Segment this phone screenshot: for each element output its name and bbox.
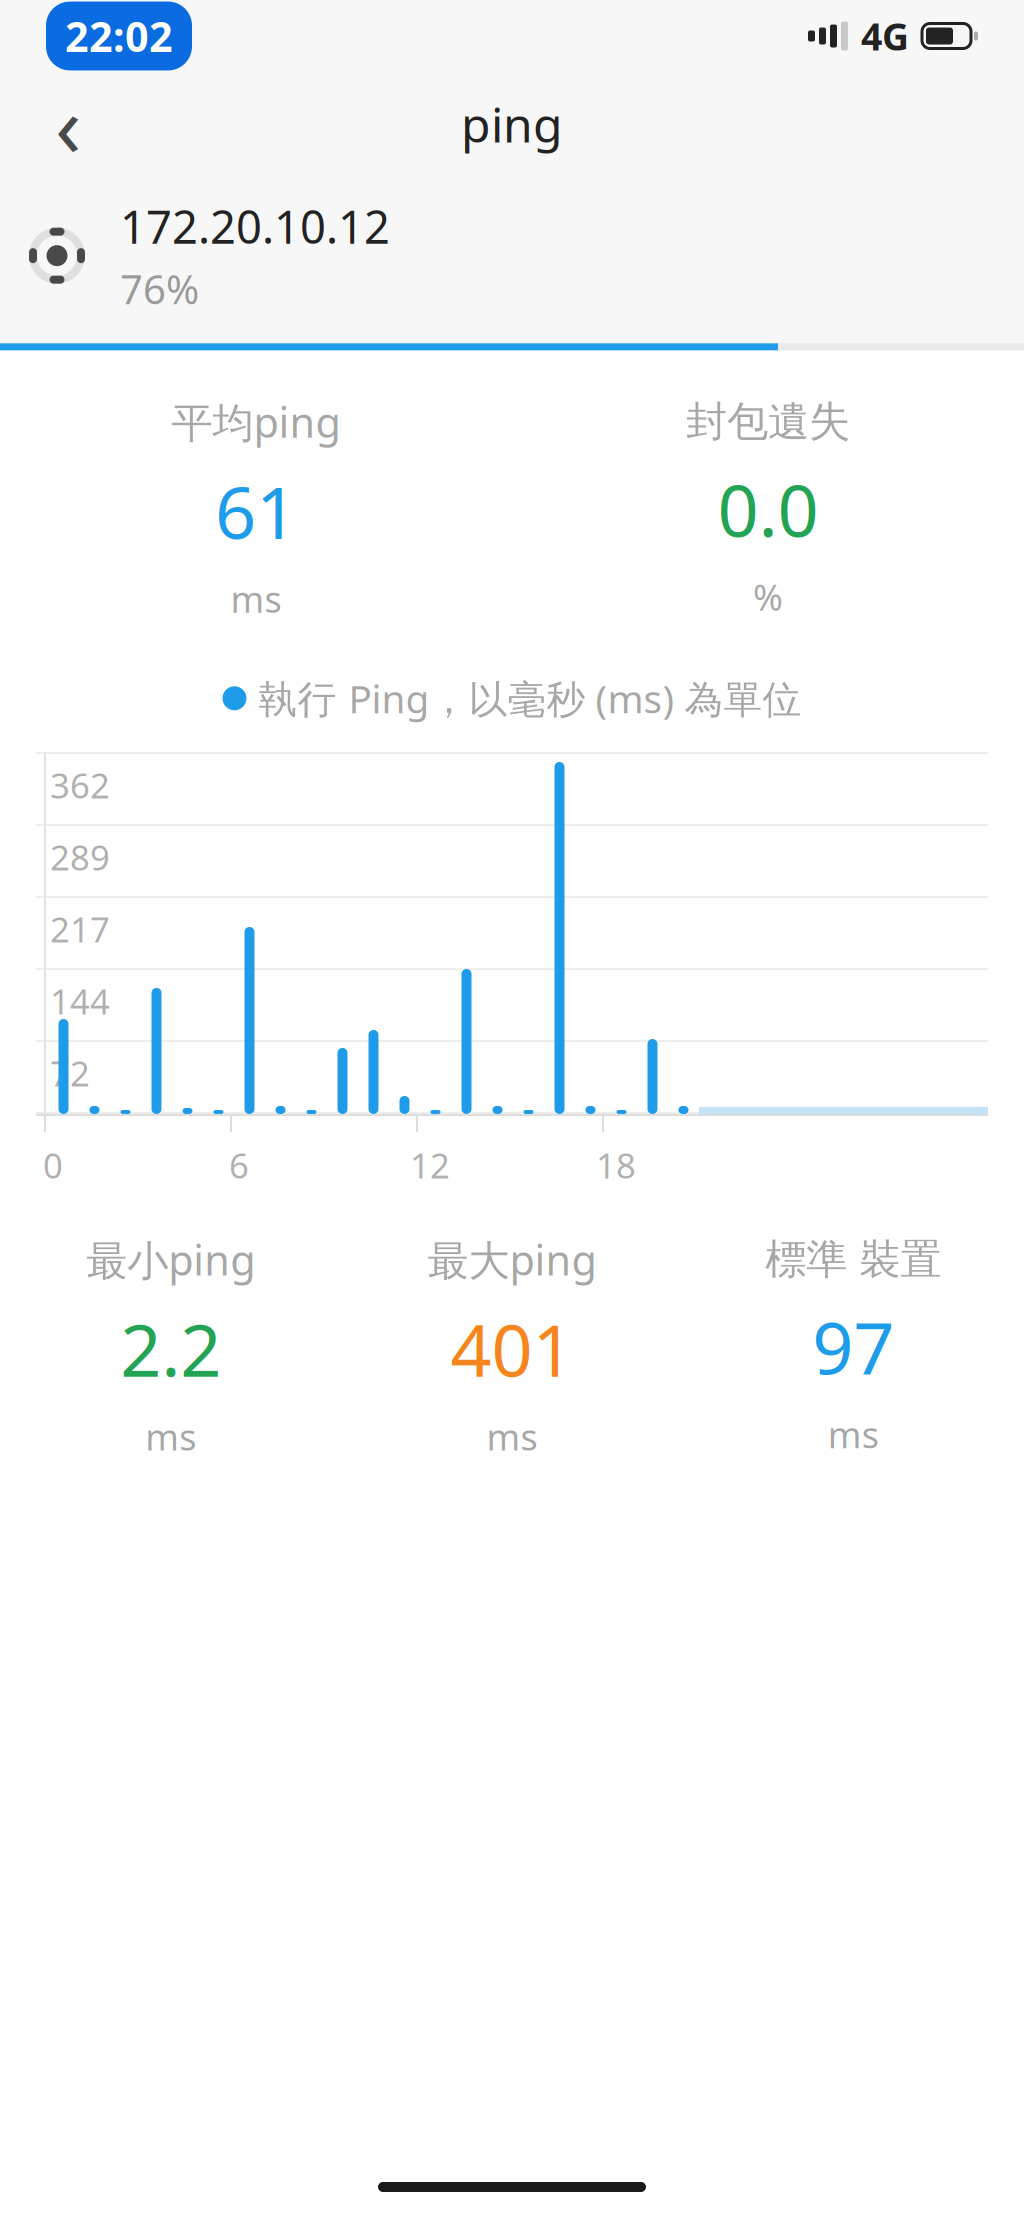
staticText: ms: [828, 1410, 879, 1458]
staticText: 12: [410, 1142, 450, 1188]
staticText: 172.20.10.12: [120, 196, 390, 256]
staticText: 401: [450, 1301, 573, 1396]
staticText: 標準 裝置: [765, 1234, 941, 1285]
staticText: 61: [215, 463, 297, 559]
staticText: 97: [812, 1299, 894, 1394]
staticText: ms: [486, 1412, 537, 1460]
staticText: 144: [50, 978, 110, 1024]
staticText: ping: [461, 92, 563, 156]
staticText: 18: [596, 1142, 636, 1188]
staticText: 22:02: [65, 9, 173, 63]
staticText: 封包遺失: [686, 396, 850, 447]
staticText: 4G: [861, 11, 909, 61]
staticText: %: [753, 573, 783, 621]
staticText: 289: [50, 834, 110, 880]
staticText: 最小ping: [86, 1232, 255, 1287]
staticText: 76%: [120, 262, 199, 315]
staticText: ‹: [55, 67, 81, 181]
staticText: 2.2: [120, 1301, 221, 1396]
staticText: 平均ping: [171, 394, 340, 449]
staticText: 72: [50, 1050, 90, 1096]
staticText: ms: [230, 575, 281, 623]
staticText: 217: [50, 906, 110, 952]
staticText: 362: [50, 762, 110, 808]
button[interactable]: Back: [22, 78, 114, 170]
staticText: ms: [145, 1412, 196, 1460]
staticText: 最大ping: [427, 1232, 596, 1287]
staticText: 0.0: [717, 461, 818, 557]
staticText: 6: [229, 1142, 249, 1188]
staticText: 0: [43, 1142, 63, 1188]
staticText: 執行 Ping，以毫秒 (ms) 為單位: [258, 673, 801, 724]
